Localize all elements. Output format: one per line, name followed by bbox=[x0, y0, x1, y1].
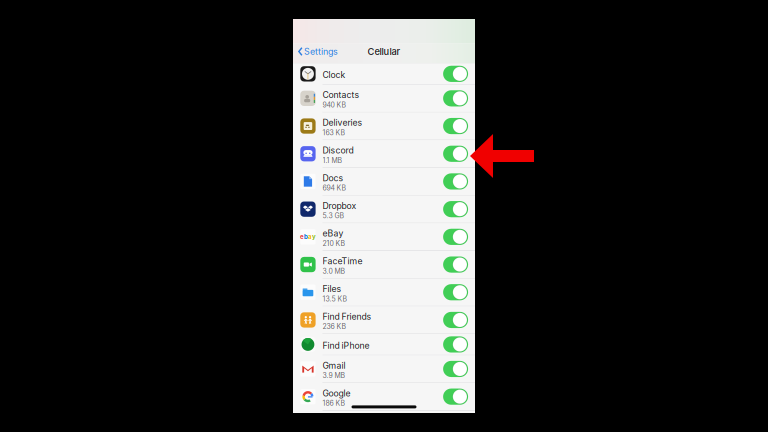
button[interactable]: FaceTime bbox=[293, 251, 475, 279]
staticText: Dropbox bbox=[322, 200, 356, 211]
staticText: Settings bbox=[304, 46, 338, 57]
staticText: Find Friends bbox=[322, 311, 371, 322]
staticText: Google bbox=[322, 388, 350, 398]
staticText: 210 KB bbox=[322, 239, 345, 248]
staticText: Clock bbox=[322, 70, 345, 80]
staticText: Contacts bbox=[322, 90, 359, 100]
button[interactable]: Google bbox=[293, 383, 475, 411]
staticText: 694 KB bbox=[322, 184, 346, 192]
button[interactable]: Docs bbox=[293, 168, 475, 196]
staticText: Deliveries bbox=[322, 117, 362, 128]
staticText: Cellular bbox=[367, 46, 400, 57]
button[interactable]: Find Friends bbox=[293, 306, 475, 334]
button[interactable]: Files bbox=[293, 279, 475, 306]
button[interactable]: Dropbox bbox=[293, 196, 475, 223]
staticText: Files bbox=[322, 284, 341, 294]
staticText: Gmail bbox=[322, 360, 345, 371]
staticText: FaceTime bbox=[322, 256, 362, 266]
button[interactable]: Deliveries bbox=[293, 112, 475, 140]
button[interactable]: Settings bbox=[293, 44, 338, 63]
button[interactable]: Gmail bbox=[293, 355, 475, 383]
staticText: 3.0 MB bbox=[322, 267, 345, 275]
staticText: b bbox=[304, 233, 308, 240]
staticText: e bbox=[300, 233, 304, 240]
staticText: 13.5 KB bbox=[322, 295, 347, 303]
staticText: 1.1 MB bbox=[322, 156, 342, 165]
staticText: 3.9 MB bbox=[322, 371, 345, 380]
button[interactable]: Find iPhone bbox=[293, 334, 475, 355]
staticText: 5.3 GB bbox=[322, 212, 344, 220]
button[interactable]: Contacts bbox=[293, 85, 475, 112]
button[interactable]: Clock bbox=[293, 63, 475, 85]
staticText: Discord bbox=[322, 145, 353, 156]
button[interactable]: e bbox=[293, 223, 475, 251]
staticText: 163 KB bbox=[322, 128, 345, 137]
staticText: 186 KB bbox=[322, 399, 345, 407]
staticText: a bbox=[308, 233, 312, 240]
staticText: 236 KB bbox=[322, 322, 346, 331]
staticText: eBay bbox=[322, 228, 343, 239]
staticText: Docs bbox=[322, 173, 343, 183]
staticText: 940 KB bbox=[322, 101, 346, 109]
staticText: y bbox=[312, 233, 316, 240]
button[interactable]: Discord bbox=[293, 140, 475, 168]
staticText: Find iPhone bbox=[322, 340, 369, 351]
